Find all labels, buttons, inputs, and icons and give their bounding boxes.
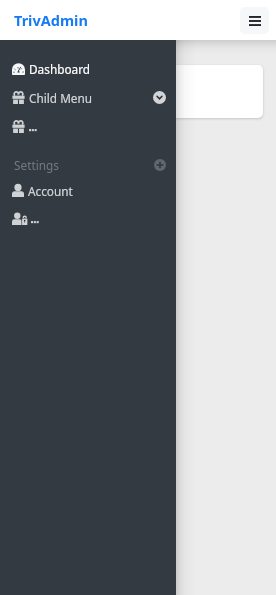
- button[interactable]: Dashboard: [0, 54, 176, 83]
- staticText: Dashboard: [29, 61, 91, 77]
- button[interactable]: [0, 112, 176, 141]
- button[interactable]: Settings: [0, 152, 176, 178]
- staticText: Child Menu: [29, 90, 93, 106]
- button[interactable]: Child Menu: [0, 83, 176, 112]
- staticText: Account: [28, 183, 73, 199]
- button[interactable]: Toggle navigation menu: [240, 7, 269, 34]
- button[interactable]: Account: [0, 177, 176, 204]
- button[interactable]: [0, 204, 176, 233]
- staticText: Settings: [14, 157, 59, 173]
- staticText: TrivAdmin: [14, 10, 88, 30]
